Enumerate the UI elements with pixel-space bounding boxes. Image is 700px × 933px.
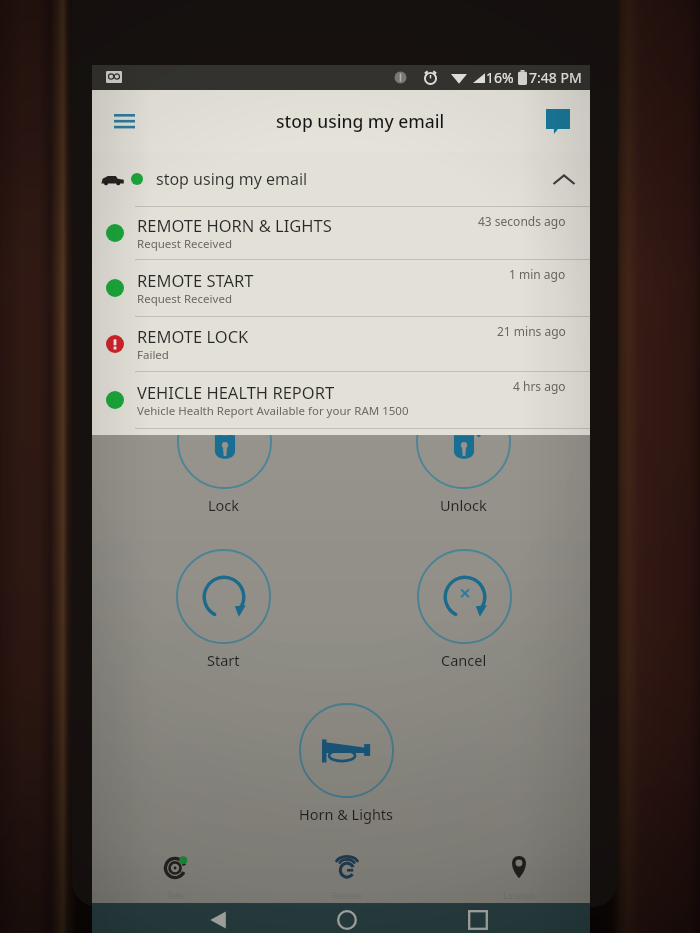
staticText: 43 seconds ago: [478, 213, 566, 229]
button[interactable]: Info: [136, 855, 216, 905]
button[interactable]: Open navigation menu: [100, 97, 148, 145]
button[interactable]: Location: [479, 855, 559, 905]
button[interactable]: VEHICLE HEALTH REPORT: [92, 372, 590, 429]
staticText: Cancel: [441, 650, 487, 670]
button[interactable]: Recent apps: [452, 906, 504, 933]
button[interactable]: Messages: [536, 99, 580, 143]
button[interactable]: Remote: [307, 855, 387, 905]
button[interactable]: Horn & Lights: [284, 703, 408, 824]
staticText: Lock: [208, 495, 240, 515]
button[interactable]: Back: [193, 906, 245, 933]
staticText: REMOTE LOCK: [137, 325, 249, 347]
staticText: Request Received: [137, 236, 232, 252]
staticText: 4 hrs ago: [513, 378, 566, 394]
button[interactable]: REMOTE HORN & LIGHTS: [92, 207, 590, 260]
button[interactable]: Start: [161, 549, 285, 670]
staticText: REMOTE START: [137, 269, 254, 291]
staticText: 16%: [486, 68, 514, 87]
staticText: Request Received: [137, 291, 232, 307]
staticText: 1 min ago: [509, 266, 566, 282]
staticText: stop using my email: [156, 168, 308, 190]
staticText: 21 mins ago: [497, 323, 566, 339]
staticText: Vehicle Health Report Available for your…: [137, 403, 409, 419]
staticText: VEHICLE HEALTH REPORT: [137, 381, 335, 403]
staticText: Unlock: [440, 495, 487, 515]
button[interactable]: Lock: [162, 394, 286, 515]
staticText: Start: [207, 650, 240, 670]
staticText: REMOTE HORN & LIGHTS: [137, 214, 332, 236]
staticText: Info: [168, 890, 184, 901]
staticText: Remote: [332, 890, 362, 901]
button[interactable]: Cancel: [402, 549, 526, 670]
staticText: Failed: [137, 347, 169, 363]
staticText: 7:48 PM: [529, 68, 582, 87]
button[interactable]: REMOTE START: [92, 260, 590, 317]
button[interactable]: REMOTE LOCK: [92, 317, 590, 372]
button[interactable]: Home: [321, 906, 373, 933]
staticText: Location: [503, 890, 536, 901]
staticText: Horn & Lights: [299, 804, 394, 824]
staticText: stop using my email: [276, 109, 445, 133]
button[interactable]: stop using my email: [92, 152, 590, 206]
button[interactable]: Unlock: [401, 394, 525, 515]
